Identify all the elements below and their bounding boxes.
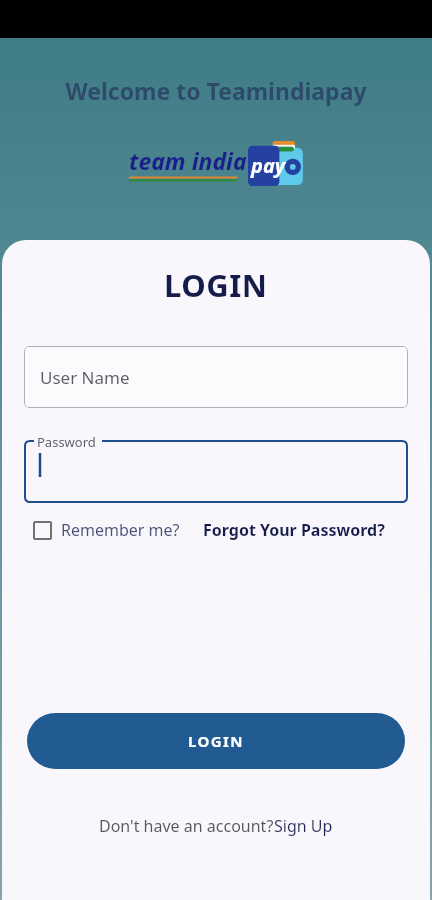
staticText: LOGIN [188, 731, 244, 751]
staticText: Password [37, 433, 96, 451]
button[interactable]: Password [24, 431, 408, 503]
staticText: User Name [40, 366, 130, 389]
button[interactable]: Forgot Your Password? [203, 519, 385, 541]
staticText: pay [251, 152, 286, 179]
button[interactable]: User Name [24, 346, 408, 408]
other: Teamindiapay logo [248, 140, 304, 188]
button[interactable]: Remember me? [33, 519, 180, 541]
staticText: Remember me? [61, 519, 180, 541]
staticText: Forgot Your Password? [203, 519, 385, 541]
staticText: team india [129, 145, 247, 176]
staticText: Welcome to Teamindiapay [65, 75, 367, 106]
staticText: LOGIN [164, 264, 268, 306]
button[interactable]: Sign Up [274, 815, 333, 837]
staticText: Sign Up [274, 815, 333, 837]
button[interactable]: LOGIN [27, 713, 405, 769]
staticText: Don't have an account? [99, 815, 274, 837]
